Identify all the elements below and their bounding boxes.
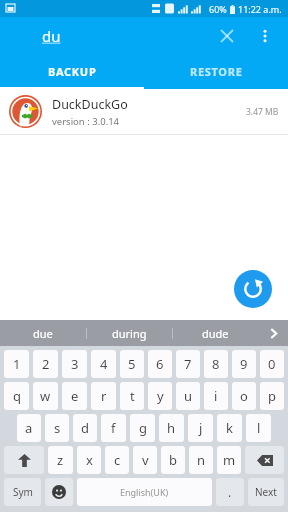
button[interactable]: k <box>217 414 242 442</box>
staticText: t <box>130 387 135 405</box>
button[interactable]: 9 <box>232 350 256 378</box>
staticText: k <box>226 419 233 437</box>
button[interactable]: e <box>62 382 87 410</box>
staticText: DuckDuckGo <box>52 96 128 113</box>
staticText: z <box>57 451 64 469</box>
staticText: 60% <box>209 3 227 15</box>
button[interactable]: a <box>17 414 41 442</box>
button[interactable]: 4 <box>91 350 116 378</box>
button[interactable]: . <box>216 478 244 506</box>
button[interactable]: Next <box>248 478 284 506</box>
button[interactable]: q <box>4 382 29 410</box>
button[interactable]: Refresh <box>234 270 272 308</box>
button[interactable]: Clear <box>212 21 242 51</box>
staticText: RESTORE <box>190 64 243 79</box>
button[interactable]: n <box>189 446 213 474</box>
staticText: 4 <box>100 355 108 373</box>
button[interactable]: BACKUP <box>0 55 144 87</box>
button[interactable]: RESTORE <box>144 55 288 87</box>
button[interactable]: h <box>159 414 184 442</box>
button[interactable]: i <box>204 382 228 410</box>
staticText: r <box>101 387 107 405</box>
staticText: 6 <box>156 355 164 373</box>
button[interactable]: d <box>73 414 97 442</box>
staticText: dude <box>202 326 229 341</box>
button[interactable]: 2 <box>33 350 58 378</box>
button[interactable]: v <box>133 446 157 474</box>
button[interactable]: 0 <box>260 350 284 378</box>
staticText: u <box>184 387 193 405</box>
button[interactable]: More suggestions <box>258 320 288 346</box>
button[interactable]: due <box>0 320 86 346</box>
staticText: a <box>25 419 33 437</box>
staticText: BACKUP <box>48 64 97 79</box>
button[interactable]: 7 <box>176 350 200 378</box>
staticText: l <box>257 419 261 437</box>
button[interactable]: More options <box>250 21 280 51</box>
staticText: 8 <box>212 355 220 373</box>
staticText: 3.47 MB <box>246 106 279 118</box>
staticText: during <box>112 326 147 341</box>
button[interactable]: Backspace <box>245 446 284 474</box>
button[interactable]: r <box>91 382 116 410</box>
button[interactable]: dude <box>173 320 258 346</box>
button[interactable]: b <box>161 446 185 474</box>
button[interactable]: g <box>130 414 155 442</box>
staticText: 5 <box>128 355 136 373</box>
staticText: 11:22 a.m. <box>238 3 282 15</box>
staticText: 0 <box>268 355 276 373</box>
button[interactable]: Shift <box>4 446 44 474</box>
staticText: 9 <box>240 355 248 373</box>
button[interactable]: j <box>188 414 213 442</box>
staticText: Sym <box>13 485 33 499</box>
button[interactable]: 5 <box>120 350 144 378</box>
staticText: c <box>114 451 121 469</box>
button[interactable]: f <box>101 414 126 442</box>
button[interactable]: l <box>246 414 271 442</box>
staticText: d <box>81 419 89 437</box>
button[interactable]: 6 <box>148 350 172 378</box>
staticText: o <box>240 387 248 405</box>
button[interactable]: DuckDuckGo <box>0 89 288 134</box>
button[interactable]: 1 <box>4 350 29 378</box>
button[interactable]: y <box>148 382 172 410</box>
staticText: h <box>167 419 176 437</box>
button[interactable]: English(UK) <box>77 478 212 506</box>
staticText: 2 <box>42 355 50 373</box>
staticText: x <box>86 451 93 469</box>
button[interactable]: m <box>217 446 241 474</box>
staticText: version : 3.0.14 <box>52 115 120 128</box>
staticText: s <box>54 419 61 437</box>
staticText: 1 <box>13 355 21 373</box>
button[interactable]: o <box>232 382 256 410</box>
staticText: English(UK) <box>120 486 169 498</box>
button[interactable]: w <box>33 382 58 410</box>
staticText: p <box>268 387 276 405</box>
staticText: i <box>214 387 218 405</box>
button[interactable]: u <box>176 382 200 410</box>
staticText: 3 <box>71 355 79 373</box>
staticText: due <box>33 326 53 341</box>
staticText: du <box>42 26 61 46</box>
staticText: v <box>142 451 149 469</box>
staticText: q <box>13 387 21 405</box>
button[interactable]: 8 <box>204 350 228 378</box>
button[interactable]: c <box>105 446 129 474</box>
staticText: m <box>223 451 236 469</box>
staticText: . <box>228 484 232 500</box>
staticText: e <box>71 387 79 405</box>
button[interactable]: z <box>48 446 73 474</box>
staticText: 7 <box>184 355 192 373</box>
button[interactable]: x <box>77 446 101 474</box>
button[interactable]: during <box>87 320 172 346</box>
staticText: y <box>157 387 164 405</box>
button[interactable]: 3 <box>62 350 87 378</box>
button[interactable]: Sym <box>4 478 41 506</box>
button[interactable]: p <box>260 382 284 410</box>
button[interactable]: s <box>45 414 69 442</box>
staticText: n <box>197 451 206 469</box>
staticText: f <box>111 419 116 437</box>
button[interactable]: Emoji <box>45 478 73 506</box>
staticText: b <box>169 451 177 469</box>
button[interactable]: t <box>120 382 144 410</box>
